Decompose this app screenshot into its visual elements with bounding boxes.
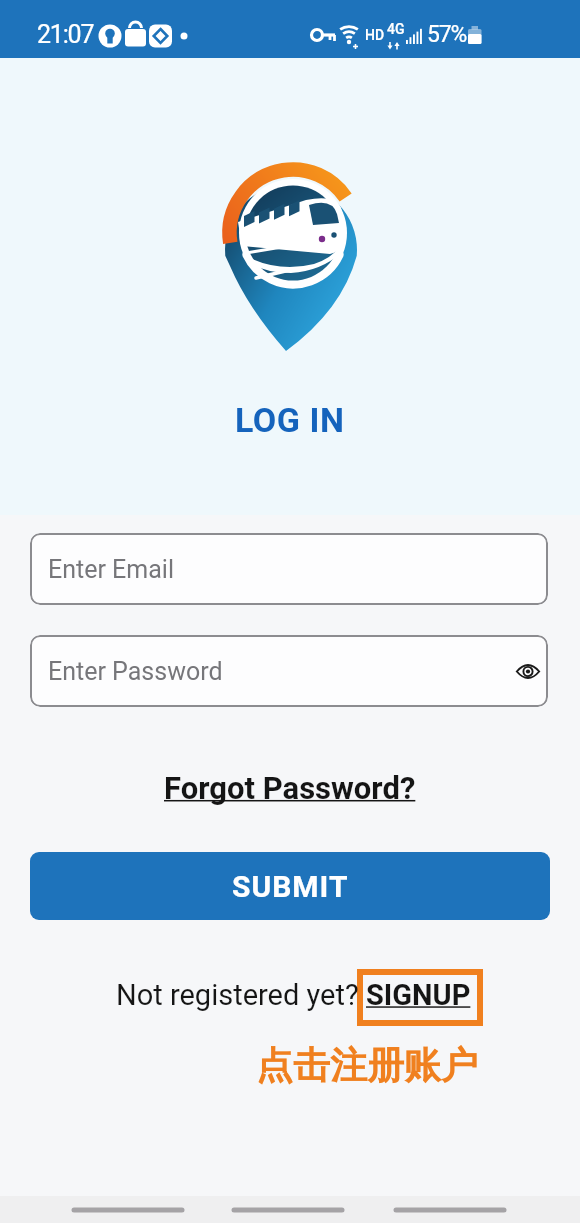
staticText: 21:07 xyxy=(37,20,94,49)
staticText: SUBMIT xyxy=(232,869,349,904)
staticText: 4G xyxy=(387,21,405,37)
button[interactable]: SIGNUP xyxy=(366,978,471,1012)
button[interactable]: Enter Password xyxy=(30,635,548,707)
staticText: 57% xyxy=(427,21,467,48)
staticText: Enter Password xyxy=(48,657,223,686)
staticText: Not registered yet? xyxy=(116,978,366,1012)
staticText: LOG IN xyxy=(235,400,345,440)
staticText: Enter Email xyxy=(48,555,175,584)
staticText: Forgot Password? xyxy=(164,770,416,806)
button[interactable]: Enter Email xyxy=(30,533,548,605)
staticText: SIGNUP xyxy=(366,978,471,1012)
button[interactable]: Forgot Password? xyxy=(0,770,580,806)
staticText: 点击注册账户 xyxy=(256,1042,478,1089)
button[interactable]: SUBMIT xyxy=(30,852,550,920)
staticText: HD xyxy=(365,27,385,43)
